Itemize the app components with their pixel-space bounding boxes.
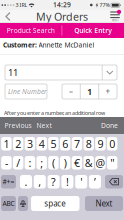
staticText: 1 xyxy=(87,85,92,98)
staticText: Next xyxy=(36,121,51,130)
staticText: 4 xyxy=(39,137,45,151)
staticText: ) xyxy=(64,156,67,170)
button[interactable]: Increase xyxy=(99,84,117,99)
staticText: ABC xyxy=(2,199,14,208)
staticText: 1 xyxy=(3,137,9,151)
staticText: Customer: xyxy=(3,41,37,49)
staticText: ; xyxy=(40,156,43,170)
staticText: 3 IRL xyxy=(15,1,27,9)
button[interactable]: Next xyxy=(85,196,123,211)
staticText: Product Search xyxy=(7,26,55,35)
staticText: 11 xyxy=(8,66,18,79)
button[interactable]: ! xyxy=(61,175,73,188)
staticText: ’ xyxy=(94,175,96,189)
staticText: 9 xyxy=(97,137,103,151)
staticText: ( xyxy=(52,156,55,170)
button[interactable]: 8 xyxy=(83,137,94,150)
button[interactable]: Product Search xyxy=(0,23,61,38)
button[interactable]: Choose product xyxy=(102,65,117,80)
button[interactable]: 6 xyxy=(60,137,70,150)
button[interactable]: Decrease xyxy=(62,84,80,99)
button[interactable]: Previous xyxy=(2,117,34,134)
button[interactable]: Dictate xyxy=(18,196,28,211)
staticText: + xyxy=(106,86,111,97)
button[interactable]: Quick Entry xyxy=(62,23,124,38)
button[interactable]: 4 xyxy=(36,137,47,150)
staticText: ? xyxy=(51,175,56,189)
staticText: – xyxy=(69,86,73,97)
staticText: 0 xyxy=(109,137,115,151)
button[interactable]: @ xyxy=(95,156,106,169)
staticText: 3 xyxy=(27,137,33,151)
button[interactable]: : xyxy=(25,156,35,169)
button[interactable]: " xyxy=(107,156,117,169)
staticText: #+= xyxy=(2,177,14,186)
staticText: Line Number xyxy=(8,87,47,96)
staticText: MENU xyxy=(111,18,118,22)
staticText: : xyxy=(28,156,31,170)
staticText: 7 xyxy=(74,137,80,151)
staticText: 6 xyxy=(62,137,68,151)
staticText: . xyxy=(24,175,27,189)
button[interactable]: space xyxy=(31,196,79,211)
staticText: ! xyxy=(66,175,69,189)
button[interactable]: ' xyxy=(75,175,87,188)
button[interactable]: ABC xyxy=(1,196,16,211)
button[interactable]: 2 xyxy=(13,137,23,150)
staticText: Previous xyxy=(4,121,31,130)
button[interactable]: , xyxy=(34,175,46,188)
staticText: 5 xyxy=(50,137,56,151)
button[interactable]: 0 xyxy=(107,137,117,150)
button[interactable]: ? xyxy=(48,175,60,188)
button[interactable]: ; xyxy=(36,156,47,169)
staticText: Done xyxy=(101,121,118,130)
button[interactable]: Back xyxy=(1,10,15,23)
button[interactable]: / xyxy=(13,156,23,169)
button[interactable]: 9 xyxy=(95,137,106,150)
staticText: Quick Entry xyxy=(74,26,112,35)
staticText: 77% xyxy=(99,1,109,9)
staticText: - xyxy=(5,156,8,170)
button[interactable]: Menu xyxy=(107,10,123,23)
button[interactable]: Delete xyxy=(105,175,123,188)
staticText: Next xyxy=(95,198,112,209)
staticText: 14:29 xyxy=(53,0,71,9)
staticText: ' xyxy=(80,175,82,189)
staticText: , xyxy=(38,175,41,189)
staticText: € xyxy=(74,156,80,170)
button[interactable]: 5 xyxy=(48,137,59,150)
staticText: 2 xyxy=(15,137,21,151)
button[interactable]: 1 xyxy=(1,137,12,150)
button[interactable]: 7 xyxy=(72,137,82,150)
staticText: My Orders xyxy=(36,9,88,24)
staticText: @ xyxy=(95,156,105,170)
button[interactable]: & xyxy=(83,156,94,169)
button[interactable]: € xyxy=(72,156,82,169)
button[interactable]: 3 xyxy=(25,137,35,150)
staticText: / xyxy=(16,156,20,170)
button[interactable]: Next xyxy=(34,117,54,134)
button[interactable]: - xyxy=(1,156,12,169)
staticText: space xyxy=(44,198,66,209)
staticText: " xyxy=(110,156,114,170)
button[interactable]: ) xyxy=(60,156,70,169)
staticText: After you enter a number, an additional … xyxy=(4,109,105,117)
staticText: Annette McDaniel xyxy=(38,41,94,49)
button[interactable]: . xyxy=(20,175,32,188)
staticText: 8 xyxy=(86,137,92,151)
button[interactable]: ( xyxy=(48,156,59,169)
staticText: & xyxy=(85,156,93,170)
button[interactable]: ’ xyxy=(89,175,101,188)
button[interactable]: Done xyxy=(97,117,122,134)
button[interactable]: #+= xyxy=(1,175,16,188)
